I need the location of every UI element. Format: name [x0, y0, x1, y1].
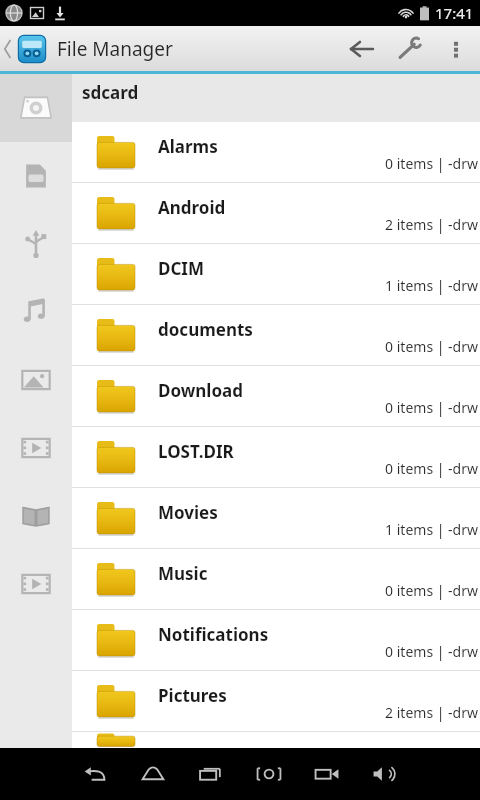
- staticText: 2 items | -drw: [385, 703, 478, 722]
- staticText: Android: [158, 196, 226, 219]
- button[interactable]: More options: [434, 27, 478, 71]
- staticText: Music: [158, 562, 208, 585]
- staticText: 0 items | -drw: [385, 642, 478, 661]
- button[interactable]: Movies: [0, 550, 72, 618]
- staticText: 0 items | -drw: [385, 337, 478, 356]
- button[interactable]: Recent apps: [182, 748, 240, 800]
- button[interactable]: Images: [0, 346, 72, 414]
- button[interactable]: LOST.DIR: [72, 427, 480, 488]
- button[interactable]: documents: [72, 305, 480, 366]
- staticText: Alarms: [158, 135, 218, 158]
- button[interactable]: Volume: [356, 748, 414, 800]
- staticText: 0 items | -drw: [385, 581, 478, 600]
- button[interactable]: Home: [124, 748, 182, 800]
- button[interactable]: File Manager: [15, 32, 173, 66]
- staticText: Download: [158, 379, 243, 402]
- staticText: File Manager: [57, 36, 173, 62]
- button[interactable]: Tools: [386, 26, 434, 71]
- button[interactable]: Screen record: [298, 748, 356, 800]
- button[interactable]: Podcasts: [72, 732, 480, 748]
- button[interactable]: Download: [72, 366, 480, 427]
- button[interactable]: Music: [72, 549, 480, 610]
- staticText: 1 items | -drw: [385, 276, 478, 295]
- button[interactable]: Videos: [0, 414, 72, 482]
- button[interactable]: Notifications: [72, 610, 480, 671]
- button[interactable]: Movies: [72, 488, 480, 549]
- staticText: 0 items | -drw: [385, 154, 478, 173]
- button[interactable]: SD card: [0, 142, 72, 210]
- staticText: 0 items | -drw: [385, 459, 478, 478]
- staticText: 1 items | -drw: [385, 520, 478, 539]
- button[interactable]: DCIM: [72, 244, 480, 305]
- staticText: sdcard: [82, 81, 139, 104]
- staticText: documents: [158, 318, 253, 341]
- staticText: DCIM: [158, 257, 205, 280]
- staticText: Movies: [158, 501, 218, 524]
- staticText: Pictures: [158, 684, 227, 707]
- button[interactable]: sdcard: [72, 74, 480, 122]
- button[interactable]: Android: [72, 183, 480, 244]
- button[interactable]: Internal storage: [0, 74, 72, 142]
- staticText: 2 items | -drw: [385, 215, 478, 234]
- button[interactable]: USB storage: [0, 210, 72, 278]
- button[interactable]: Music: [0, 278, 72, 346]
- button[interactable]: Documents: [0, 482, 72, 550]
- button[interactable]: Pictures: [72, 671, 480, 732]
- staticText: 0 items | -drw: [385, 398, 478, 417]
- staticText: Notifications: [158, 623, 269, 646]
- button[interactable]: Screenshot: [240, 748, 298, 800]
- button[interactable]: Back: [66, 748, 124, 800]
- button[interactable]: Back: [338, 26, 386, 71]
- staticText: 17:41: [435, 3, 474, 23]
- staticText: LOST.DIR: [158, 440, 234, 463]
- button[interactable]: Alarms: [72, 122, 480, 183]
